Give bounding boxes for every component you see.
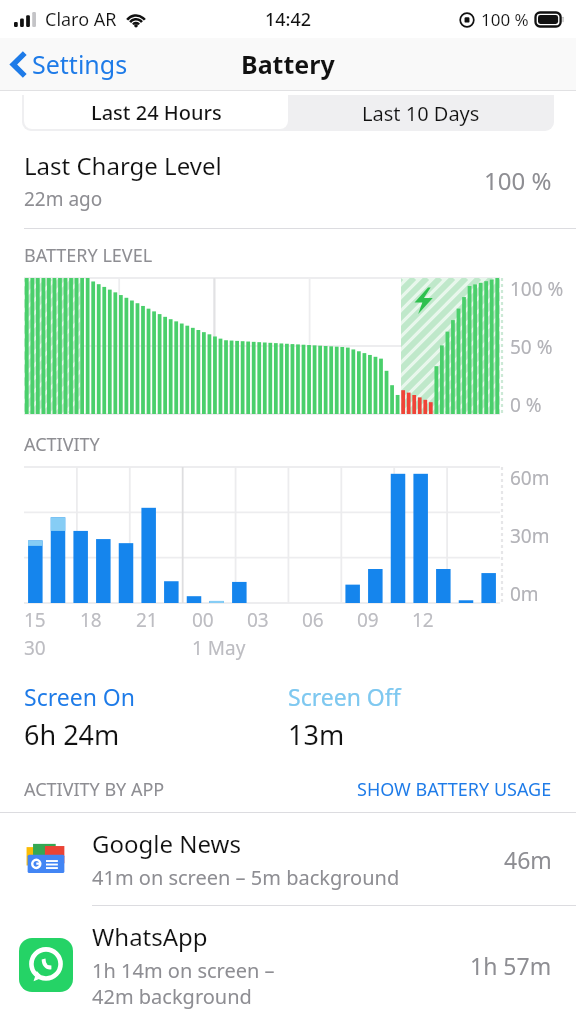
button[interactable]: Google News icon	[0, 813, 576, 905]
staticText: Last 24 Hours	[91, 99, 222, 126]
staticText: Last 10 Days	[362, 100, 480, 127]
button[interactable]: Screen On	[24, 681, 288, 753]
staticText: 6h 24m	[24, 716, 120, 753]
button[interactable]: Last 10 Days	[288, 95, 554, 131]
button[interactable]: Last 24 Hours	[24, 95, 288, 129]
staticText: 00	[192, 607, 214, 633]
staticText: Claro AR	[45, 7, 117, 32]
button[interactable]: SHOW BATTERY USAGE	[357, 777, 552, 802]
staticText: 30 Apr	[24, 635, 80, 665]
staticText: 22m ago	[24, 186, 103, 212]
staticText: 1h 57m	[470, 950, 552, 981]
staticText: ACTIVITY BY APP	[24, 777, 357, 802]
button[interactable]: Screen Off	[288, 681, 552, 753]
staticText: 1 May	[192, 635, 246, 661]
staticText: 100 %	[481, 8, 529, 31]
staticText: BATTERY LEVEL	[24, 243, 153, 268]
button[interactable]: Last Charge Level	[0, 131, 576, 229]
staticText: Last Charge Level	[24, 149, 222, 182]
staticText: 03	[247, 607, 269, 633]
button[interactable]: Settings	[0, 39, 140, 89]
staticText: 60m	[510, 465, 550, 491]
staticText: 14:42	[265, 7, 312, 32]
staticText: 100 %	[510, 276, 564, 302]
staticText: Screen Off	[288, 681, 401, 712]
staticText: 0 %	[510, 392, 542, 418]
staticText: 50 %	[510, 334, 553, 360]
staticText: 12	[412, 607, 434, 633]
staticText: 09	[357, 607, 379, 633]
other: Google News icon	[19, 832, 73, 886]
staticText: 1h 14m on screen – 42m background	[92, 957, 275, 1010]
staticText: Settings	[32, 47, 128, 81]
staticText: 30m	[510, 523, 550, 549]
button[interactable]: WhatsApp icon	[0, 906, 576, 1024]
staticText: 100 %	[484, 164, 552, 197]
staticText: 06	[302, 607, 324, 633]
staticText: 18	[80, 607, 102, 633]
staticText: ACTIVITY	[24, 432, 100, 457]
staticText: WhatsApp	[92, 920, 208, 953]
staticText: SHOW BATTERY USAGE	[357, 777, 552, 802]
staticText: Google News	[92, 827, 241, 860]
staticText: 46m	[504, 844, 552, 875]
staticText: 13m	[288, 716, 345, 753]
staticText: Battery	[241, 47, 335, 81]
staticText: Screen On	[24, 681, 136, 712]
staticText: 15	[24, 607, 46, 633]
staticText: 21	[136, 607, 158, 633]
staticText: 41m on screen – 5m background	[92, 864, 400, 891]
staticText: 0m	[510, 581, 539, 607]
other: WhatsApp icon	[19, 938, 73, 992]
